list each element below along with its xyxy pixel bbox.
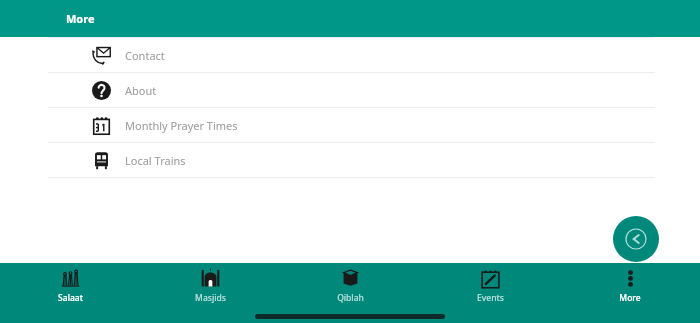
button[interactable]: Events — [420, 263, 560, 309]
staticText: More — [66, 11, 95, 26]
staticText: Masjids — [195, 292, 226, 304]
button[interactable]: Local Trains — [0, 143, 700, 177]
button[interactable]: About — [0, 73, 700, 107]
staticText: Salaat — [58, 292, 83, 304]
staticText: Local Trains — [125, 153, 186, 168]
staticText: About — [125, 83, 157, 98]
button[interactable]: More — [560, 263, 700, 309]
staticText: Events — [477, 292, 504, 304]
button[interactable]: Salaat — [0, 263, 140, 309]
button[interactable]: Qiblah — [280, 263, 420, 309]
staticText: Qiblah — [337, 292, 364, 304]
button[interactable]: Masjids — [140, 263, 280, 309]
button[interactable]: Monthly Prayer Times — [0, 108, 700, 142]
staticText: Monthly Prayer Times — [125, 118, 238, 133]
staticText: Contact — [125, 48, 165, 63]
button[interactable]: Contact — [0, 38, 700, 72]
staticText: More — [619, 292, 641, 304]
button[interactable]: Back — [613, 216, 659, 262]
